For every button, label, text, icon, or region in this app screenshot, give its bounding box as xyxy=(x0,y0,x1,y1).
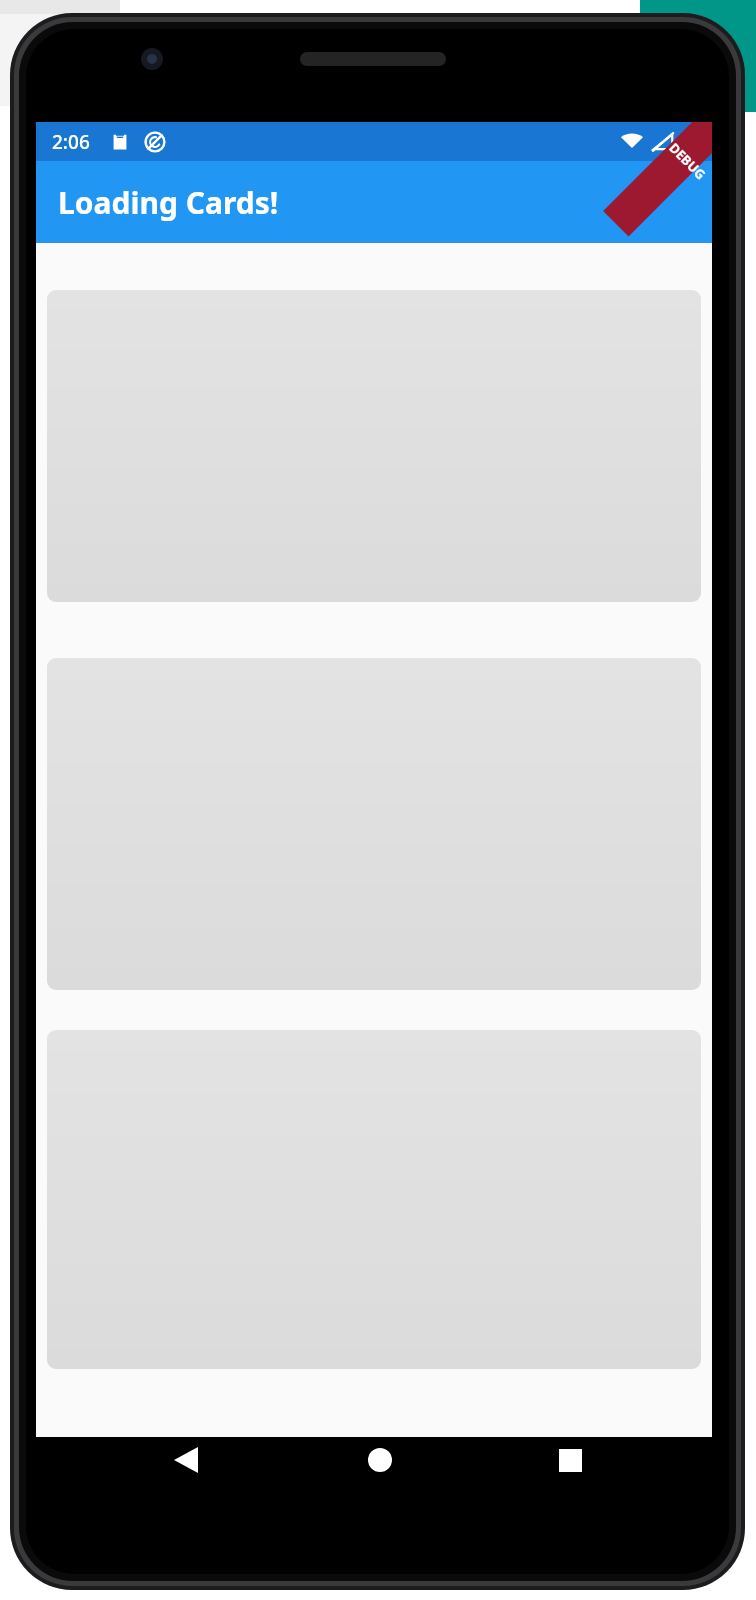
button[interactable]: Recent apps xyxy=(547,1437,593,1483)
staticText: Loading Cards! xyxy=(58,182,279,223)
button[interactable]: Back xyxy=(163,1437,209,1483)
staticText: 2:06 xyxy=(52,129,90,155)
button[interactable]: Home xyxy=(357,1437,403,1483)
staticText: DEBUG xyxy=(665,139,710,183)
